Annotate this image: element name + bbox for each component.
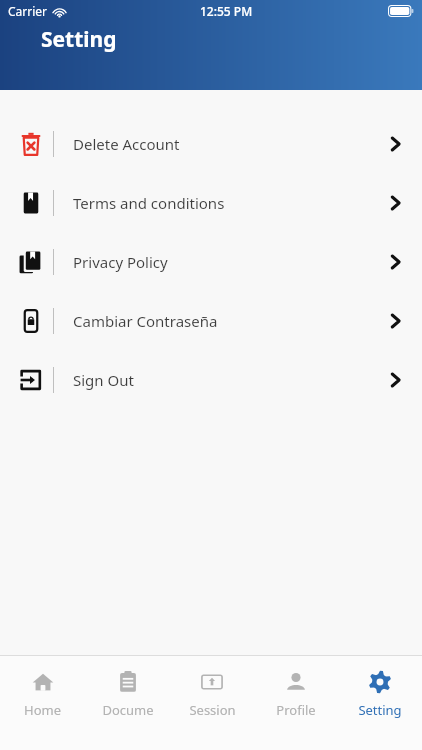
staticText: Session — [189, 701, 236, 719]
staticText: Docume — [102, 701, 154, 719]
staticText: Carrier — [8, 3, 48, 19]
staticText: Setting — [358, 701, 402, 719]
staticText: Setting — [41, 25, 117, 54]
button[interactable]: Cambiar Contraseña — [0, 291, 422, 350]
staticText: Cambiar Contraseña — [73, 311, 218, 331]
button[interactable]: Setting — [338, 656, 422, 750]
button[interactable]: Privacy Policy — [0, 232, 422, 291]
button[interactable]: Session — [170, 656, 254, 750]
staticText: Terms and conditions — [73, 193, 225, 213]
button[interactable]: Docume — [85, 656, 170, 750]
button[interactable]: Profile — [254, 656, 338, 750]
staticText: Delete Account — [73, 134, 180, 154]
staticText: Home — [24, 701, 61, 719]
staticText: Privacy Policy — [73, 252, 168, 272]
button[interactable]: Sign Out — [0, 350, 422, 409]
staticText: 12:55 PM — [200, 3, 253, 19]
staticText: Sign Out — [73, 370, 134, 390]
button[interactable]: Delete Account — [0, 114, 422, 173]
button[interactable]: Home — [0, 656, 85, 750]
button[interactable]: Terms and conditions — [0, 173, 422, 232]
staticText: Profile — [276, 701, 316, 719]
